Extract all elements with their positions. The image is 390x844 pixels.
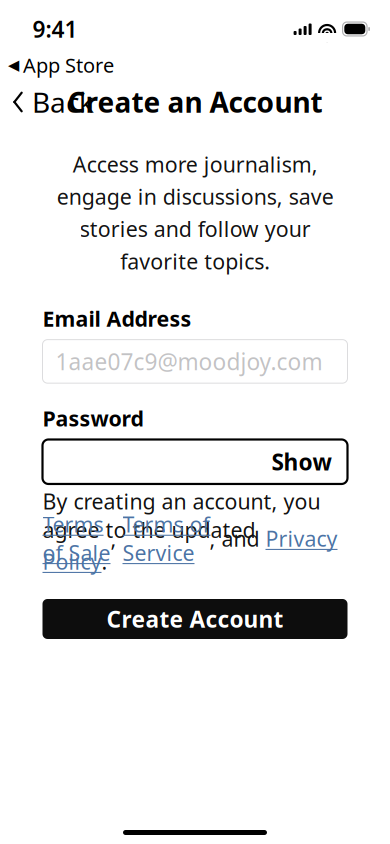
staticText: Terms of Service bbox=[122, 510, 209, 567]
button[interactable]: 1aae07c9@moodjoy.com bbox=[42, 340, 347, 383]
button[interactable]: Privacy bbox=[265, 524, 337, 553]
button[interactable]: Back bbox=[0, 77, 106, 127]
staticText: Create Account bbox=[106, 604, 283, 634]
staticText: Email Address bbox=[42, 304, 191, 333]
staticText: Policy bbox=[42, 547, 101, 576]
button[interactable]: Create Account bbox=[42, 599, 347, 639]
staticText: , and bbox=[209, 524, 265, 553]
staticText: ◀ bbox=[8, 57, 19, 73]
button[interactable]: Show bbox=[267, 441, 335, 483]
button[interactable]: Terms of Sale bbox=[42, 510, 110, 567]
staticText: , bbox=[110, 524, 122, 553]
staticText: Show bbox=[271, 447, 331, 477]
staticText: Terms of Sale bbox=[42, 510, 110, 567]
staticText: 1aae07c9@moodjoy.com bbox=[55, 346, 322, 376]
staticText: Access more journalism, engage in discus… bbox=[56, 150, 333, 275]
button[interactable]: Terms of Service bbox=[122, 510, 209, 567]
button[interactable]: Policy bbox=[42, 547, 101, 576]
staticText: Privacy bbox=[265, 524, 337, 553]
button[interactable]: ◀ bbox=[0, 50, 114, 80]
staticText: 9:41 bbox=[32, 14, 77, 44]
staticText: By creating an account, you agree to the… bbox=[42, 487, 320, 544]
staticText: App Store bbox=[23, 52, 114, 78]
staticText: . bbox=[101, 547, 107, 576]
staticText: Create an Account bbox=[67, 83, 322, 121]
staticText: Back bbox=[32, 83, 94, 121]
staticText: Password bbox=[42, 404, 143, 432]
